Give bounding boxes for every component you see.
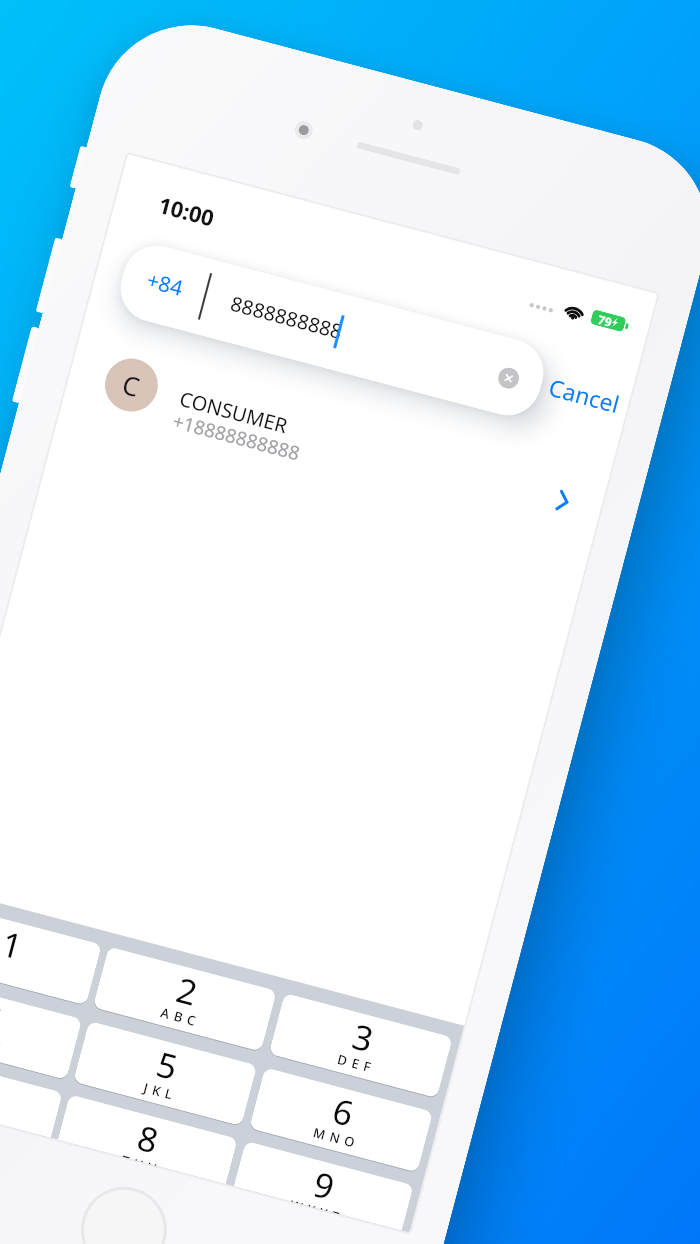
button[interactable]: 9 xyxy=(234,1141,414,1231)
button[interactable]: 8 xyxy=(58,1094,238,1184)
staticText: 2 xyxy=(171,966,203,1016)
button[interactable]: +84 xyxy=(113,238,551,423)
staticText: Cancel xyxy=(546,371,623,419)
staticText: 6 xyxy=(328,1087,359,1137)
button[interactable]: Clear text xyxy=(496,365,521,391)
button[interactable]: 1 xyxy=(0,900,102,1005)
button[interactable]: 6 xyxy=(249,1067,433,1173)
staticText: TUV xyxy=(122,1151,163,1167)
button[interactable]: C xyxy=(61,338,609,547)
staticText: 8888888888 xyxy=(228,290,346,345)
staticText: JKL xyxy=(142,1078,179,1104)
staticText: +18888888888 xyxy=(170,408,303,466)
staticText: 3 xyxy=(347,1012,378,1062)
staticText: +84 xyxy=(144,266,187,303)
staticText: CONSUMER xyxy=(177,385,291,439)
staticText: WXYZ xyxy=(291,1195,346,1216)
staticText: 5 xyxy=(152,1040,183,1090)
staticText: ABC xyxy=(158,1003,203,1031)
button[interactable]: Cancel xyxy=(546,371,623,419)
button[interactable]: 2 xyxy=(93,946,277,1052)
staticText: C xyxy=(119,366,144,404)
staticText: MNO xyxy=(311,1123,362,1153)
staticText: 8 xyxy=(132,1114,163,1164)
button[interactable]: 5 xyxy=(73,1021,257,1126)
staticText: 4 xyxy=(0,994,8,1044)
staticText: 1 xyxy=(0,920,28,969)
staticText: 79 xyxy=(597,311,614,329)
staticText: 10:00 xyxy=(155,189,218,233)
other: Contact details xyxy=(555,490,571,513)
staticText: DEF xyxy=(335,1050,378,1077)
button[interactable]: 3 xyxy=(269,993,453,1098)
staticText: 9 xyxy=(308,1160,339,1210)
button[interactable]: 4 xyxy=(0,975,82,1080)
button[interactable]: 7 xyxy=(0,1048,63,1138)
